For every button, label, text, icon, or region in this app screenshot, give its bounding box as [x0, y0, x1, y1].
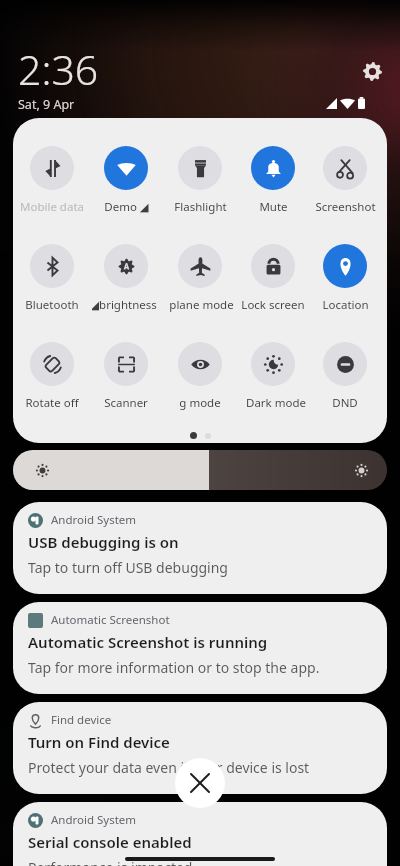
staticText: g mode	[170, 395, 230, 410]
button[interactable]: Settings	[358, 57, 386, 85]
button[interactable]: Rotate off	[18, 342, 86, 410]
button[interactable]: Bluetooth	[18, 244, 86, 312]
staticText: 2:36	[18, 41, 99, 97]
staticText: Scanner	[104, 395, 148, 410]
staticText: Android System	[51, 512, 137, 528]
button[interactable]: Scanner	[92, 342, 160, 410]
staticText: Serial console enabled	[28, 832, 192, 852]
staticText: Dark mode	[240, 395, 306, 410]
staticText: Mobile data	[20, 199, 84, 214]
staticText: Tap to turn off USB debugging	[28, 558, 228, 577]
staticText: DND	[332, 395, 358, 410]
button[interactable]: Dark mode	[239, 342, 307, 410]
button[interactable]: Location	[311, 244, 379, 312]
button[interactable]: g mode	[166, 342, 234, 410]
staticText: Screenshot	[315, 199, 376, 214]
button[interactable]: Screenshot	[311, 146, 379, 214]
staticText: Find device	[51, 712, 112, 728]
staticText: Lock screen	[241, 297, 305, 312]
staticText: Automatic Screenshot	[51, 612, 170, 628]
button[interactable]: Lock screen	[239, 244, 307, 312]
button[interactable]: Flashlight	[166, 146, 234, 214]
staticText: Rotate off	[25, 395, 79, 410]
staticText: USB debugging is on	[28, 532, 179, 552]
staticText: Protect your data even if your device is…	[28, 758, 310, 777]
staticText: Flashlight	[174, 199, 227, 214]
staticText: Mute	[259, 199, 288, 214]
staticText: Automatic Screenshot is running	[28, 632, 268, 652]
button[interactable]: ◢brightness	[92, 244, 160, 312]
staticText: Sat, 9 Apr	[18, 96, 75, 113]
button[interactable]: plane mode	[166, 244, 234, 312]
staticText: Performance is impacted	[28, 858, 193, 866]
button[interactable]: Automatic Screenshot	[13, 602, 387, 694]
staticText: Turn on Find device	[28, 732, 170, 752]
staticText: Demo ◢	[104, 199, 149, 214]
staticText: ◢brightness	[92, 297, 160, 312]
staticText: Bluetooth	[25, 297, 79, 312]
button[interactable]	[13, 450, 387, 490]
staticText: Tap for more information or to stop the …	[28, 658, 320, 677]
button[interactable]: Android System	[13, 502, 387, 594]
button[interactable]: Demo ◢	[92, 146, 160, 214]
button[interactable]: Mobile data	[18, 146, 86, 214]
staticText: plane mode	[166, 297, 234, 312]
button[interactable]: DND	[311, 342, 379, 410]
staticText: Android System	[51, 812, 137, 828]
button[interactable]: Find device	[13, 702, 387, 794]
staticText: Location	[322, 297, 369, 312]
button[interactable]: Android System	[13, 802, 387, 866]
button[interactable]: Clear all notifications	[175, 758, 225, 808]
button[interactable]: Mute	[239, 146, 307, 214]
